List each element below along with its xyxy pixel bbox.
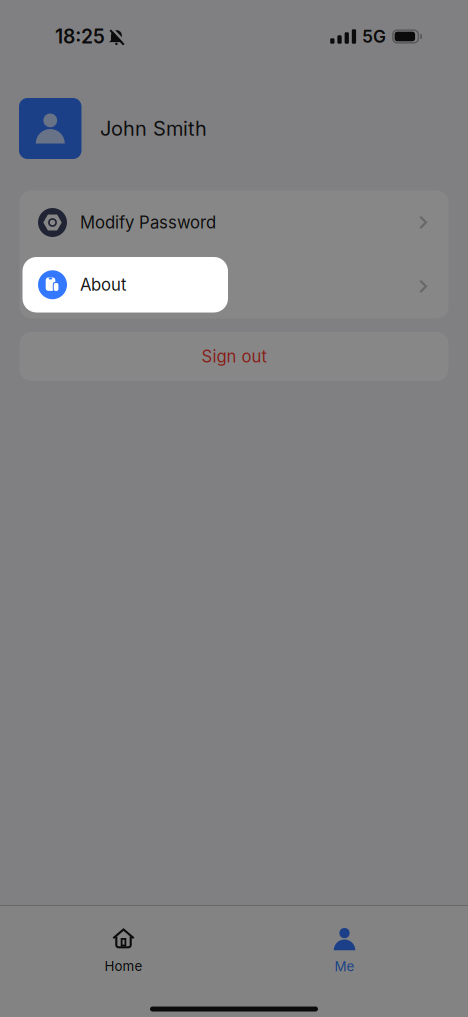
button[interactable]: About [22, 257, 228, 312]
staticText: Home [104, 958, 142, 974]
staticText: About [80, 276, 126, 297]
button[interactable]: About [19, 254, 448, 318]
button[interactable]: Modify Password [19, 190, 448, 254]
staticText: Modify Password [80, 212, 216, 233]
button[interactable]: Sign out [19, 332, 448, 381]
button[interactable]: Profile, John Smith [19, 98, 207, 159]
staticText: Sign out [201, 346, 266, 367]
staticText: Me [334, 958, 354, 974]
staticText: 5G [362, 26, 386, 47]
button[interactable]: Me [234, 928, 455, 986]
staticText: John Smith [100, 117, 207, 140]
button[interactable]: Home [13, 928, 234, 986]
staticText: 18:25 [55, 25, 105, 48]
staticText: About [80, 275, 126, 295]
